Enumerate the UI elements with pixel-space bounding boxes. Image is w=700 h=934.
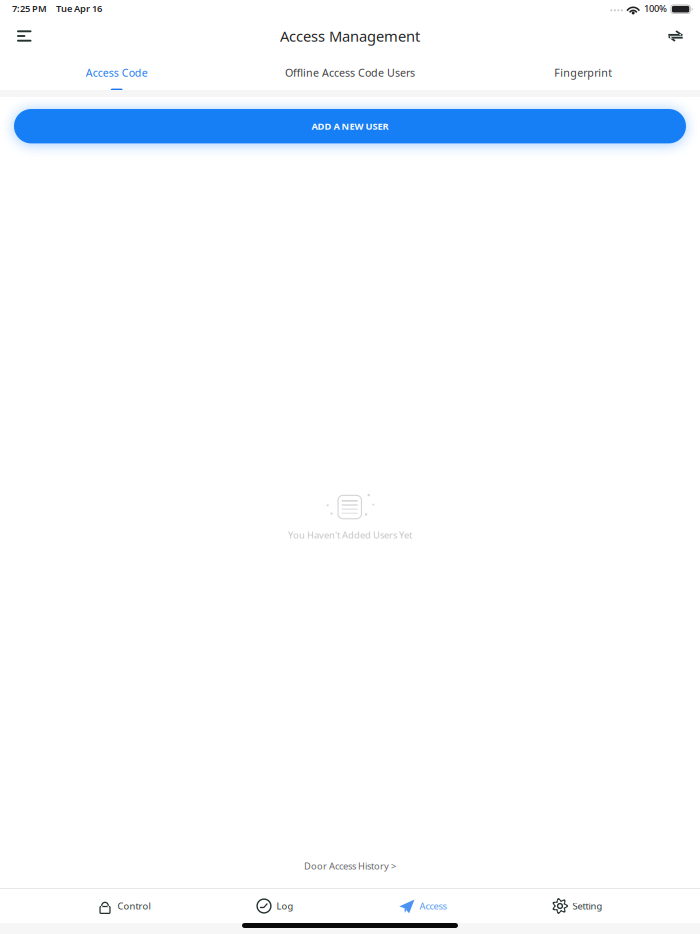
staticText: Control (117, 900, 150, 912)
button[interactable]: ADD A NEW USER (14, 109, 686, 143)
staticText: 7:25 PM (12, 2, 47, 15)
staticText: Door Access History > (304, 860, 396, 872)
button[interactable]: Fingerprint (467, 52, 700, 93)
staticText: Access Code (86, 65, 148, 80)
button[interactable]: Access Code (0, 52, 233, 93)
button[interactable]: Access (389, 890, 456, 922)
staticText: Access Management (280, 26, 420, 46)
button[interactable]: Switch device (655, 19, 696, 53)
staticText: Access (419, 900, 446, 912)
staticText: 100% (644, 2, 667, 15)
button[interactable]: Control (87, 890, 160, 922)
staticText: Fingerprint (554, 65, 612, 80)
staticText: ADD A NEW USER (311, 120, 388, 132)
button[interactable]: Setting (542, 890, 612, 922)
staticText: Tue Apr 16 (56, 2, 102, 15)
button[interactable]: Menu (4, 19, 44, 53)
staticText: Offline Access Code Users (285, 65, 415, 80)
staticText: Setting (572, 900, 602, 912)
staticText: You Haven't Added Users Yet (288, 529, 412, 541)
button[interactable]: Door Access History > (0, 850, 700, 882)
staticText: Log (276, 900, 293, 912)
button[interactable]: Log (246, 890, 303, 922)
button[interactable]: Offline Access Code Users (233, 52, 467, 93)
